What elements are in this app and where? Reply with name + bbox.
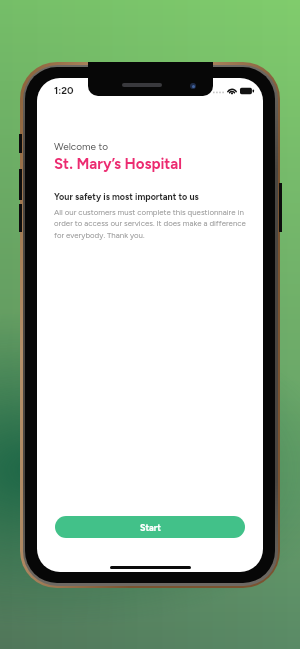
staticText: St. Mary’s Hospital [54,155,182,173]
button[interactable]: Start [55,516,245,538]
staticText: Your safety is most important to us [54,191,199,202]
staticText: All our customers must complete this que… [54,207,246,240]
staticText: Welcome to [54,140,109,152]
staticText: Start [140,522,161,533]
staticText: 1:20 [54,84,74,96]
